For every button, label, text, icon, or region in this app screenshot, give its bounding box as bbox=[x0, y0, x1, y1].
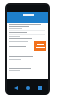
button[interactable]: Recents bbox=[36, 84, 43, 91]
button[interactable]: Back bbox=[12, 84, 19, 91]
button[interactable]: Home bbox=[24, 84, 31, 91]
button[interactable] bbox=[34, 41, 46, 51]
button[interactable] bbox=[7, 12, 48, 23]
